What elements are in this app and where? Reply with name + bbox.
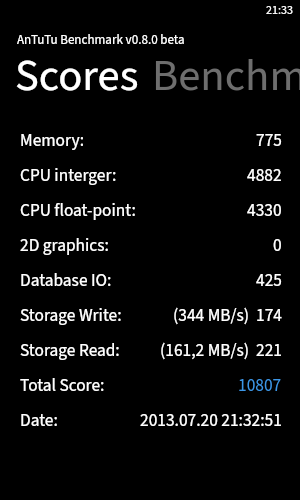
staticText: AnTuTu Benchmark v0.8.0 beta	[17, 31, 185, 50]
button[interactable]: CPU float-point:	[0, 193, 300, 228]
button[interactable]: 2D graphics:	[0, 228, 300, 263]
staticText: Memory:	[20, 128, 85, 153]
button[interactable]: Benchmark	[152, 44, 300, 107]
staticText: 2013.07.20 21:32:51	[140, 408, 282, 433]
button[interactable]: CPU interger:	[0, 158, 300, 193]
button[interactable]: Scores	[15, 44, 139, 107]
staticText: 21:33	[266, 2, 293, 19]
button[interactable]: Date:	[0, 403, 300, 438]
staticText: 4330	[247, 198, 282, 223]
staticText: Database IO:	[20, 268, 112, 293]
staticText: Storage Read:	[20, 338, 120, 363]
staticText: (161,2 MB/s) 221	[160, 338, 282, 363]
button[interactable]: Storage Write:	[0, 298, 300, 333]
button[interactable]: Storage Read:	[0, 333, 300, 368]
other: Status bar	[0, 0, 300, 22]
staticText: 0	[273, 233, 282, 258]
button[interactable]: Total Score:	[0, 368, 300, 403]
staticText: CPU float-point:	[20, 198, 136, 223]
staticText: CPU interger:	[20, 163, 117, 188]
staticText: 4882	[247, 163, 282, 188]
staticText: Date:	[20, 408, 58, 433]
staticText: Total Score:	[20, 373, 105, 398]
staticText: 2D graphics:	[20, 233, 109, 258]
button[interactable]: Database IO:	[0, 263, 300, 298]
staticText: 10807	[238, 373, 282, 398]
staticText: 775	[256, 128, 282, 153]
staticText: (344 MB/s) 174	[173, 303, 282, 328]
staticText: Storage Write:	[20, 303, 122, 328]
button[interactable]: Memory:	[0, 123, 300, 158]
staticText: 425	[256, 268, 282, 293]
